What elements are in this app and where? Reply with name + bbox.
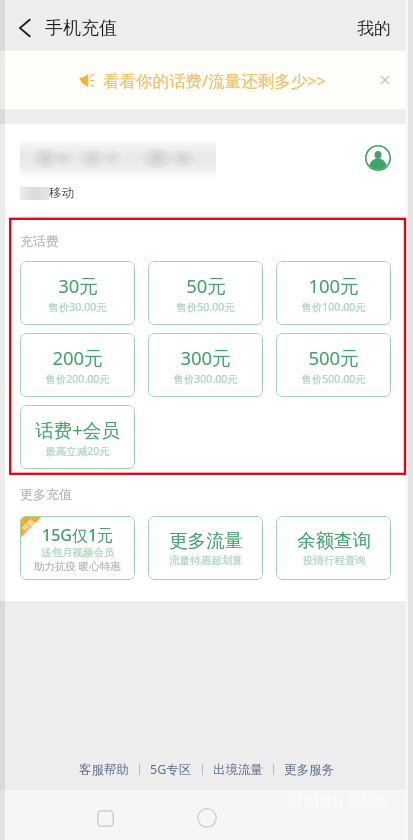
button[interactable]: Recents (88, 801, 122, 835)
staticText: 售价100.00元 (301, 300, 366, 314)
staticText: 客服帮助 (79, 762, 129, 778)
button[interactable]: 300元 (148, 333, 263, 397)
staticText: 50元 (186, 273, 226, 298)
staticText: 充话费 (20, 233, 59, 249)
staticText: 200元 (52, 345, 103, 370)
button[interactable]: 200元 (20, 333, 135, 397)
staticText: 更多充值 (20, 486, 72, 502)
button[interactable]: Home (190, 801, 224, 835)
staticText: 移动 (49, 185, 74, 201)
button[interactable]: 余额查询 (276, 516, 391, 580)
staticText: 5G专区 (150, 761, 192, 778)
staticText: 我的 (357, 18, 391, 39)
staticText: 特惠 (21, 518, 36, 532)
staticText: 出境流量 (213, 762, 263, 778)
staticText: 看看你的话费/流量还剩多少>> (103, 69, 327, 92)
staticText: 售价30.00元 (48, 300, 107, 314)
staticText: 流量特惠超划算 (169, 554, 243, 567)
staticText: 售价500.00元 (301, 372, 366, 386)
button[interactable]: 5G专区 (140, 756, 202, 783)
button[interactable]: 出境流量 (203, 757, 273, 783)
staticText: 疫情行程查询 (303, 554, 366, 567)
staticText: 更多流量 (169, 529, 243, 552)
button[interactable]: 我的 (341, 4, 413, 47)
button[interactable]: 50元 (148, 261, 263, 325)
button[interactable]: Close (371, 66, 399, 94)
staticText: 余额查询 (297, 529, 371, 552)
staticText: 300元 (180, 345, 231, 370)
staticText: 更多服务 (284, 762, 334, 778)
button[interactable]: 30元 (20, 261, 135, 325)
button[interactable]: 更多服务 (274, 757, 344, 783)
staticText: 售价200.00元 (45, 372, 110, 386)
button[interactable]: Back (6, 9, 44, 47)
button[interactable]: 500元 (276, 333, 391, 397)
staticText: 15G仅1元 (42, 524, 114, 546)
staticText: 助力抗疫 暖心特惠 (34, 559, 121, 573)
staticText: 100元 (308, 273, 359, 298)
staticText: 最高立减20元 (45, 444, 110, 458)
staticText: 30元 (58, 273, 98, 298)
button[interactable]: 100元 (276, 261, 391, 325)
button[interactable]: 客服帮助 (69, 757, 139, 783)
button[interactable]: 看看你的话费/流量还剩多少>> (0, 51, 413, 109)
staticText: 售价50.00元 (176, 300, 235, 314)
button[interactable]: 更多流量 (148, 516, 263, 580)
staticText: 500元 (308, 345, 359, 370)
staticText: 送包月视频会员 (41, 546, 115, 559)
button[interactable]: 话费+会员 (20, 405, 135, 469)
staticText: 手机充值 (45, 17, 117, 40)
staticText: 售价300.00元 (173, 372, 238, 386)
button[interactable]: 特惠 (20, 516, 135, 580)
button[interactable]: Account (360, 140, 396, 176)
staticText: 话费+会员 (35, 417, 120, 442)
